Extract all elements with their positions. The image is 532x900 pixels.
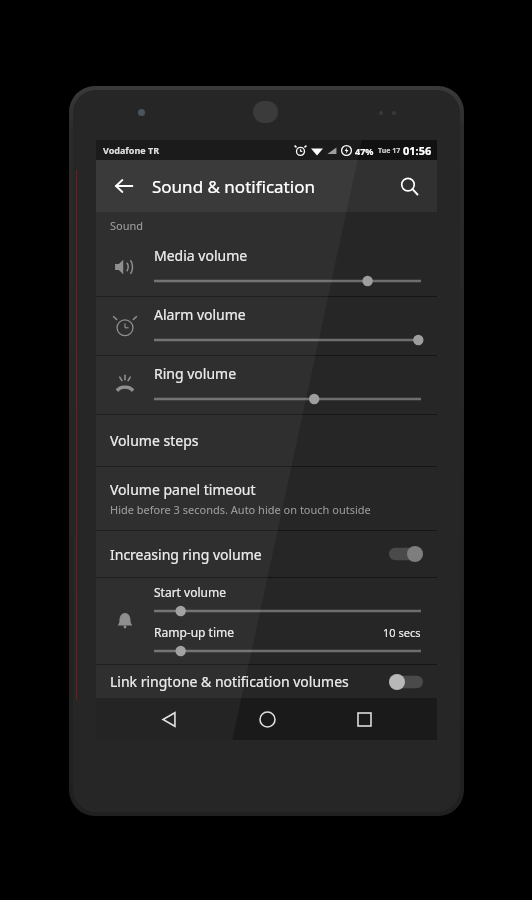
staticText: Sound: [110, 218, 144, 233]
staticText: Sound & notification: [152, 175, 315, 198]
button[interactable]: Media volume: [96, 238, 437, 296]
staticText: Ramp-up time: [154, 624, 383, 640]
button[interactable]: Back: [104, 166, 144, 206]
button[interactable]: Alarm volume: [96, 297, 437, 355]
button[interactable]: Home: [243, 698, 291, 740]
button[interactable]: Back: [145, 698, 193, 740]
button[interactable]: Volume steps: [96, 415, 437, 466]
staticText: Vodafone TR: [103, 144, 160, 156]
staticText: Hide before 3 seconds. Auto hide on touc…: [110, 502, 371, 517]
button[interactable]: Link ringtone & notification volumes: [96, 665, 437, 698]
button[interactable]: Volume panel timeout: [96, 467, 437, 530]
button[interactable]: Search: [389, 166, 429, 206]
staticText: Link ringtone & notification volumes: [110, 672, 389, 691]
staticText: Volume panel timeout: [110, 480, 256, 499]
staticText: Alarm volume: [154, 305, 246, 324]
staticText: Tue 17: [378, 146, 401, 156]
staticText: Volume steps: [110, 431, 199, 450]
staticText: 01:56: [403, 143, 432, 158]
staticText: Media volume: [154, 246, 248, 265]
staticText: 10 secs: [383, 625, 421, 640]
staticText: 47%: [355, 145, 374, 157]
button[interactable]: Increasing ring volume: [96, 531, 437, 577]
staticText: Ring volume: [154, 364, 237, 383]
staticText: Increasing ring volume: [110, 545, 389, 564]
button[interactable]: Ring volume: [96, 356, 437, 414]
button[interactable]: Recents: [340, 698, 388, 740]
staticText: Start volume: [154, 584, 226, 600]
